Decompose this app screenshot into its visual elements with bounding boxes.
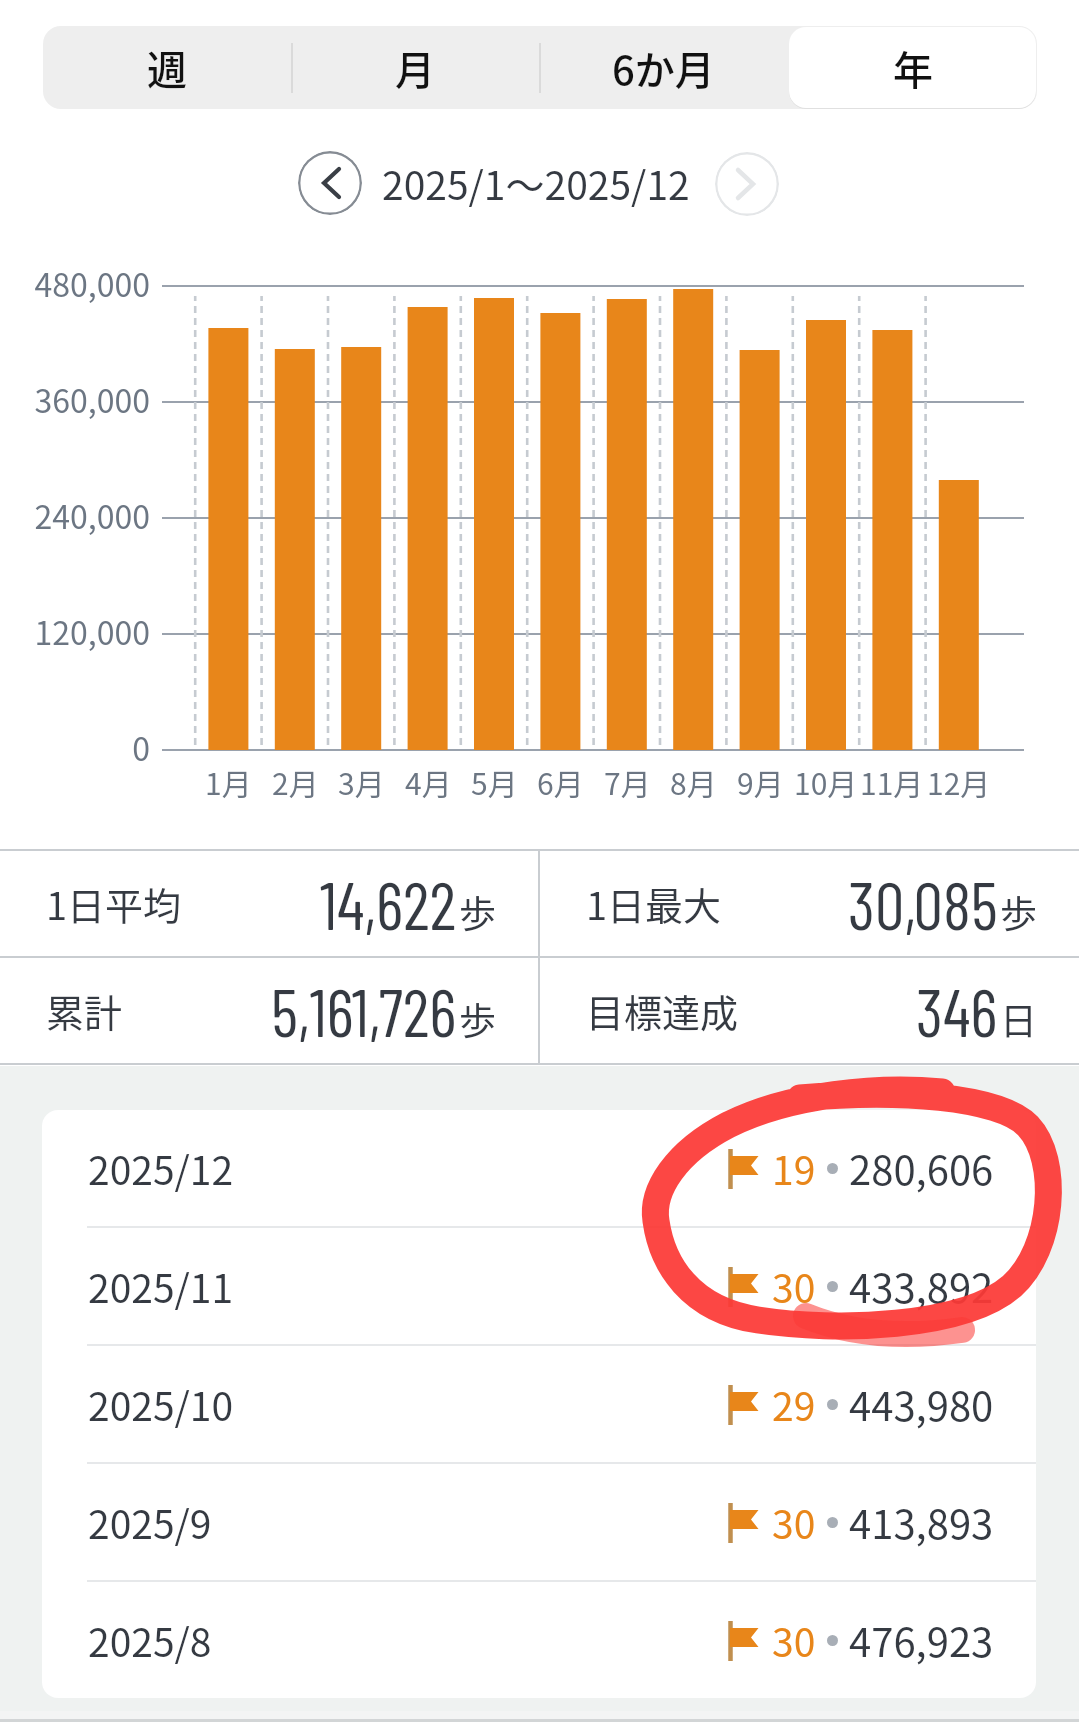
staticText: 歩 [1000, 885, 1037, 939]
staticText: 9月 [737, 760, 784, 803]
staticText: 1月 [205, 760, 252, 803]
staticText: 8月 [670, 760, 717, 803]
staticText: 2月 [272, 760, 319, 803]
staticText: 120,000 [0, 608, 150, 654]
staticText: 7月 [604, 760, 651, 803]
staticText: 2025/1〜2025/12 [382, 155, 690, 211]
staticText: 歩 [459, 885, 496, 939]
staticText: 29 [772, 1376, 816, 1432]
staticText: 12月 [927, 760, 991, 803]
staticText: 月 [395, 39, 435, 97]
staticText: 5,161,726 [271, 971, 457, 1050]
button[interactable]: Previous period [298, 151, 362, 215]
staticText: 2025/11 [88, 1258, 234, 1314]
button[interactable]: 1日平均 [0, 851, 538, 956]
button[interactable]: 2025/8 [42, 1582, 1036, 1698]
button[interactable]: 2025/12 [42, 1110, 1036, 1226]
staticText: 2025/10 [88, 1376, 234, 1432]
staticText: 年 [893, 39, 933, 97]
staticText: 30 [772, 1258, 816, 1314]
staticText: 360,000 [0, 376, 150, 422]
staticText: 280,606 [849, 1139, 994, 1197]
staticText: 346 [916, 971, 998, 1050]
staticText: 累計 [46, 983, 123, 1038]
staticText: 14,622 [320, 864, 457, 943]
staticText: 240,000 [0, 492, 150, 538]
button[interactable]: 年 [788, 26, 1037, 109]
staticText: 週 [147, 39, 187, 97]
button[interactable]: 目標達成 [540, 958, 1079, 1063]
staticText: 6月 [537, 760, 584, 803]
staticText: 目標達成 [586, 983, 739, 1038]
staticText: 30,085 [848, 864, 998, 943]
staticText: 443,980 [849, 1375, 994, 1433]
staticText: 30 [772, 1612, 816, 1668]
staticText: 1日平均 [46, 876, 182, 931]
staticText: 歩 [459, 992, 496, 1046]
staticText: 5月 [471, 760, 518, 803]
staticText: 日 [1000, 992, 1037, 1046]
staticText: 2025/12 [88, 1140, 234, 1196]
button[interactable]: 1日最大 [540, 851, 1079, 956]
staticText: 2025/8 [88, 1612, 212, 1668]
staticText: 476,923 [849, 1611, 994, 1669]
staticText: 6か月 [612, 39, 715, 97]
staticText: 10月 [794, 760, 858, 803]
staticText: 1日最大 [586, 876, 722, 931]
staticText: 3月 [338, 760, 385, 803]
staticText: 0 [0, 724, 150, 770]
staticText: 30 [772, 1494, 816, 1550]
staticText: 2025/9 [88, 1494, 212, 1550]
button[interactable]: Next period [715, 152, 779, 216]
staticText: 19 [772, 1140, 816, 1196]
staticText: 480,000 [0, 260, 150, 306]
staticText: 11月 [860, 760, 924, 803]
staticText: 413,893 [849, 1493, 994, 1551]
button[interactable]: 週 [43, 26, 291, 109]
staticText: 4月 [405, 760, 452, 803]
button[interactable]: 2025/9 [42, 1464, 1036, 1580]
button[interactable]: 2025/10 [42, 1346, 1036, 1462]
button[interactable]: 月 [291, 26, 539, 109]
staticText: 433,892 [849, 1257, 994, 1315]
button[interactable]: 累計 [0, 958, 538, 1063]
button[interactable]: 6か月 [539, 26, 788, 109]
button[interactable]: 2025/11 [42, 1228, 1036, 1344]
